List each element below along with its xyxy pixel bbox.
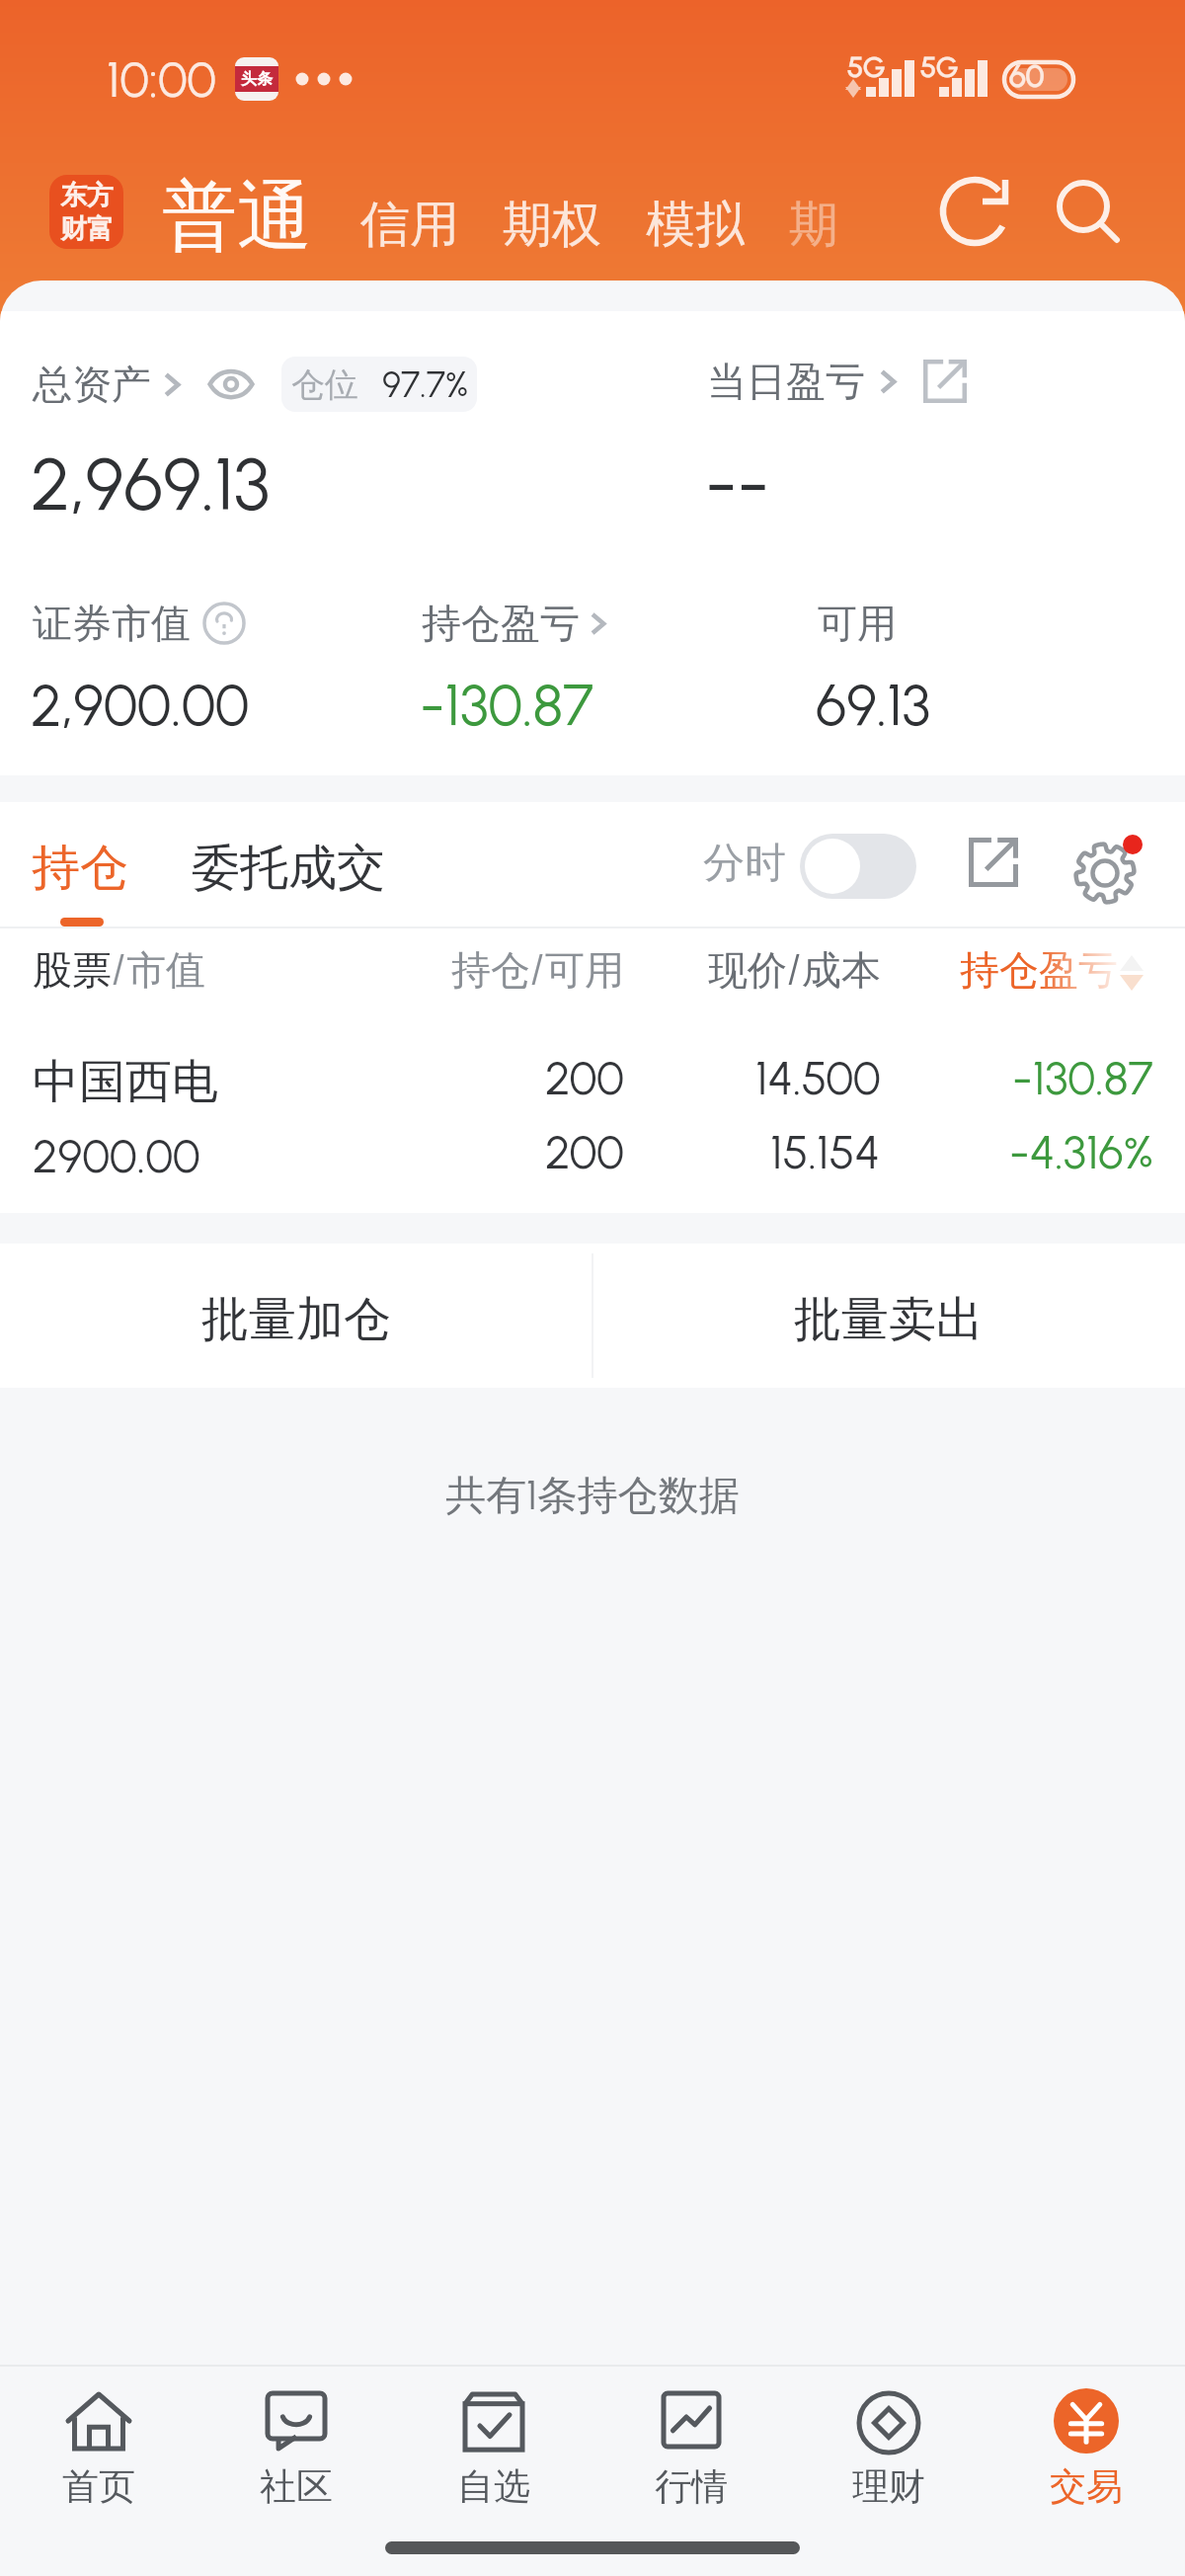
staticText: 60 — [1009, 58, 1045, 95]
staticText: -130.87 — [420, 671, 593, 740]
button[interactable]: 行情 — [592, 2367, 790, 2533]
button[interactable]: 普通 — [162, 170, 312, 265]
button[interactable]: 交易 — [987, 2367, 1185, 2533]
staticText: 可用 — [545, 945, 624, 995]
staticText: 中国西电 — [33, 1053, 218, 1111]
button[interactable]: 持仓 — [32, 838, 128, 899]
staticText: -130.87 — [1012, 1050, 1153, 1105]
staticText: 成本 — [802, 945, 881, 995]
staticText: 可用 — [818, 599, 897, 648]
staticText: -4.316% — [1009, 1124, 1153, 1179]
staticText: 社区 — [260, 2463, 333, 2510]
button[interactable]: 委托成交 — [192, 838, 385, 899]
staticText: 5G — [847, 49, 886, 84]
staticText: / — [787, 945, 802, 993]
button[interactable]: East Money logo — [49, 175, 123, 249]
button[interactable]: 社区 — [197, 2367, 395, 2533]
staticText: 股票 — [33, 945, 112, 995]
staticText: 2900.00 — [33, 1128, 200, 1183]
staticText: -- — [705, 441, 770, 528]
staticText: 200 — [545, 1124, 624, 1179]
button[interactable]: 期权 — [503, 194, 601, 256]
staticText: 持仓 — [451, 945, 530, 995]
staticText: 交易 — [1050, 2463, 1123, 2510]
staticText: 分时 — [703, 838, 786, 890]
staticText: 信用 — [360, 194, 459, 256]
staticText: 共有1条持仓数据 — [445, 1471, 740, 1522]
staticText: 批量卖出 — [794, 1290, 984, 1349]
staticText: 总资产 — [33, 360, 151, 409]
staticText: 财富 — [60, 212, 114, 246]
button[interactable]: 2900.00 — [0, 1124, 1185, 1187]
staticText: 普通 — [162, 170, 312, 265]
staticText: / — [112, 945, 126, 993]
staticText: 批量加仓 — [201, 1290, 391, 1349]
button[interactable]: 信用 — [360, 194, 459, 256]
button[interactable]: Search — [1049, 172, 1128, 251]
staticText: 现价 — [708, 945, 787, 995]
button[interactable]: 中国西电 — [0, 1050, 1185, 1113]
staticText: 97.7% — [382, 363, 468, 406]
button[interactable]: 模拟 — [646, 194, 745, 256]
staticText: 2,900.00 — [31, 671, 250, 740]
staticText: 首页 — [62, 2463, 135, 2510]
button[interactable]: Refresh — [935, 172, 1014, 251]
staticText: 委托成交 — [192, 838, 385, 899]
staticText: 69.13 — [816, 671, 931, 740]
staticText: 2,969.13 — [31, 441, 271, 528]
staticText: 15.154 — [770, 1124, 881, 1179]
staticText: 持仓 — [32, 838, 128, 899]
staticText: / — [530, 945, 545, 993]
staticText: 持仓盈亏 — [422, 599, 580, 648]
button[interactable]: 首页 — [0, 2367, 197, 2533]
staticText: 东方 — [60, 179, 114, 212]
button[interactable]: Settings — [1069, 830, 1148, 909]
staticText: 200 — [545, 1050, 624, 1105]
button[interactable]: 批量加仓 — [0, 1244, 592, 1388]
staticText: 头条 — [241, 69, 273, 89]
staticText: 市值 — [126, 945, 205, 995]
button[interactable]: 批量卖出 — [592, 1244, 1185, 1388]
staticText: 期 — [789, 194, 838, 256]
button[interactable]: 自选 — [395, 2367, 592, 2533]
staticText: 当日盈亏 — [707, 357, 865, 406]
staticText: 模拟 — [646, 194, 745, 256]
button[interactable]: Open in new window — [961, 830, 1026, 895]
staticText: 持仓盈亏 — [960, 945, 1118, 995]
button[interactable]: Toggle time-sharing chart — [800, 834, 916, 899]
staticText: 仓位 — [291, 363, 358, 406]
staticText: 理财 — [852, 2463, 925, 2510]
staticText: 行情 — [655, 2463, 728, 2510]
staticText: 证券市值 — [33, 599, 191, 648]
staticText: 期权 — [503, 194, 601, 256]
button[interactable]: 理财 — [790, 2367, 987, 2533]
staticText: 14.500 — [755, 1050, 881, 1105]
staticText: 10:00 — [107, 49, 217, 109]
staticText: 自选 — [457, 2463, 530, 2510]
staticText: 5G — [920, 49, 959, 84]
